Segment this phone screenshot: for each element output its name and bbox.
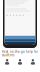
staticText: Real, on-the-go help for students [2, 50, 38, 57]
